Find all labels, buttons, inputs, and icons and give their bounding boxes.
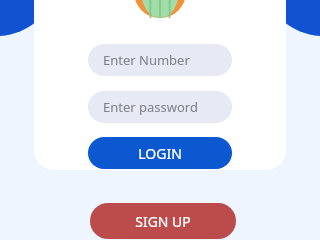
staticText: Enter password (103, 98, 198, 116)
button[interactable]: SIGN UP (90, 203, 236, 239)
staticText: LOGIN (138, 144, 182, 163)
button[interactable]: Enter password (88, 91, 232, 123)
button[interactable]: Enter Number (88, 44, 232, 76)
staticText: SIGN UP (135, 212, 191, 231)
staticText: Enter Number (103, 51, 190, 69)
button[interactable]: LOGIN (88, 137, 232, 169)
